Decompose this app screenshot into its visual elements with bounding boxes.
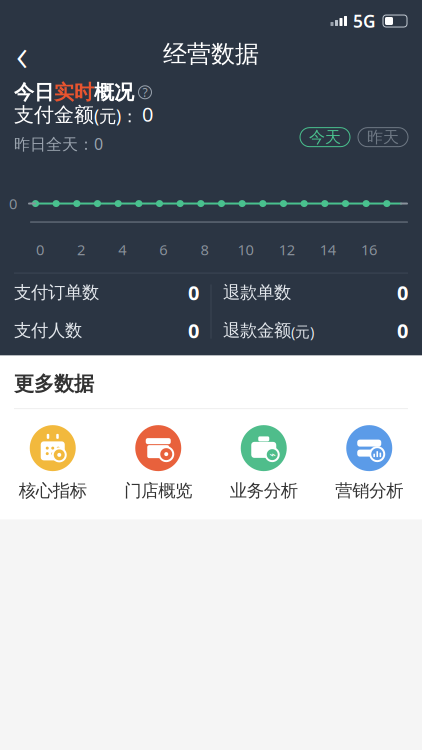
- staticText: 今天: [309, 127, 341, 147]
- staticText: 实时: [54, 80, 94, 105]
- staticText: 8: [200, 240, 208, 259]
- staticText: 概况: [94, 80, 134, 105]
- staticText: 更多数据: [14, 372, 94, 396]
- staticText: 0: [397, 317, 408, 344]
- staticText: 昨日全天：0: [14, 133, 103, 154]
- staticText: 门店概览: [124, 480, 192, 501]
- button[interactable]: 今天: [300, 128, 350, 147]
- staticText: 退款单数: [223, 282, 291, 303]
- staticText: (元)：: [94, 104, 138, 127]
- staticText: 营销分析: [335, 480, 403, 501]
- staticText: 0: [188, 279, 199, 306]
- staticText: 业务分析: [230, 480, 298, 501]
- button[interactable]: 返回: [0, 32, 44, 76]
- staticText: 0: [188, 317, 199, 344]
- staticText: 16: [361, 240, 377, 259]
- staticText: 退款金额: [223, 320, 291, 341]
- staticText: 经营数据: [163, 39, 259, 69]
- staticText: 支付人数: [14, 320, 82, 341]
- staticText: 10: [238, 240, 254, 259]
- button[interactable]: 门店概览: [105, 425, 211, 501]
- staticText: 支付订单数: [14, 282, 99, 303]
- staticText: (元): [291, 322, 314, 341]
- staticText: 0: [9, 194, 17, 213]
- staticText: 0: [397, 279, 408, 306]
- staticText: 4: [118, 240, 126, 259]
- staticText: 今日: [14, 80, 54, 105]
- staticText: 0: [36, 240, 44, 259]
- staticText: 2: [77, 240, 85, 259]
- staticText: 14: [320, 240, 336, 259]
- button[interactable]: 营销分析: [316, 425, 422, 501]
- staticText: 5G: [353, 9, 376, 32]
- staticText: 0: [142, 101, 153, 127]
- button[interactable]: ⌁: [211, 425, 316, 501]
- staticText: 6: [159, 240, 167, 259]
- button[interactable]: 说明: [134, 81, 156, 103]
- staticText: 核心指标: [19, 480, 87, 501]
- staticText: ‹: [16, 24, 28, 84]
- staticText: ⌁: [269, 449, 275, 461]
- staticText: 昨天: [367, 127, 399, 147]
- staticText: 12: [279, 240, 295, 259]
- staticText: 支付金额: [14, 103, 94, 127]
- staticText: ?: [142, 84, 147, 100]
- button[interactable]: 昨天: [358, 128, 408, 147]
- button[interactable]: 核心指标: [0, 425, 105, 501]
